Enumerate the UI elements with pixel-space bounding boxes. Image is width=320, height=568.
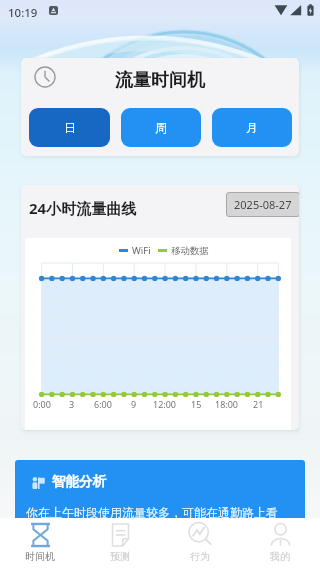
staticText: 15 bbox=[191, 398, 202, 410]
button[interactable]: 行为 bbox=[160, 518, 240, 568]
staticText: 周 bbox=[155, 120, 167, 135]
button[interactable]: 预测 bbox=[80, 518, 160, 568]
staticText: 你在上午时段使用流量较多，可能在通勤路上看 bbox=[26, 505, 278, 520]
staticText: WiFi bbox=[132, 244, 151, 257]
staticText: 0:00 bbox=[33, 398, 51, 410]
staticText: 18:00 bbox=[215, 398, 239, 410]
staticText: 24小时流量曲线 bbox=[29, 198, 137, 218]
staticText: 行为 bbox=[190, 550, 210, 563]
button[interactable]: 我的 bbox=[240, 518, 320, 568]
button[interactable]: 月 bbox=[212, 108, 292, 147]
button[interactable]: 日 bbox=[29, 108, 110, 147]
button[interactable]: 2025-08-27 bbox=[226, 192, 299, 217]
staticText: 预测 bbox=[110, 550, 130, 563]
staticText: 21 bbox=[253, 398, 264, 410]
staticText: 我的 bbox=[270, 550, 290, 563]
staticText: 智能分析 bbox=[52, 473, 106, 490]
staticText: 3 bbox=[69, 398, 75, 410]
staticText: 10:19 bbox=[8, 5, 38, 21]
staticText: 2025-08-27 bbox=[234, 197, 292, 212]
staticText: 移动数据 bbox=[171, 245, 209, 257]
staticText: 日 bbox=[64, 120, 76, 135]
staticText: 月 bbox=[246, 120, 258, 135]
staticText: 流量时间机 bbox=[115, 69, 205, 92]
staticText: 9 bbox=[131, 398, 137, 410]
button[interactable]: 周 bbox=[121, 108, 201, 147]
staticText: 6:00 bbox=[94, 398, 112, 410]
staticText: 12:00 bbox=[153, 398, 177, 410]
button[interactable]: 时间机 bbox=[0, 518, 80, 568]
staticText: 时间机 bbox=[25, 550, 55, 563]
